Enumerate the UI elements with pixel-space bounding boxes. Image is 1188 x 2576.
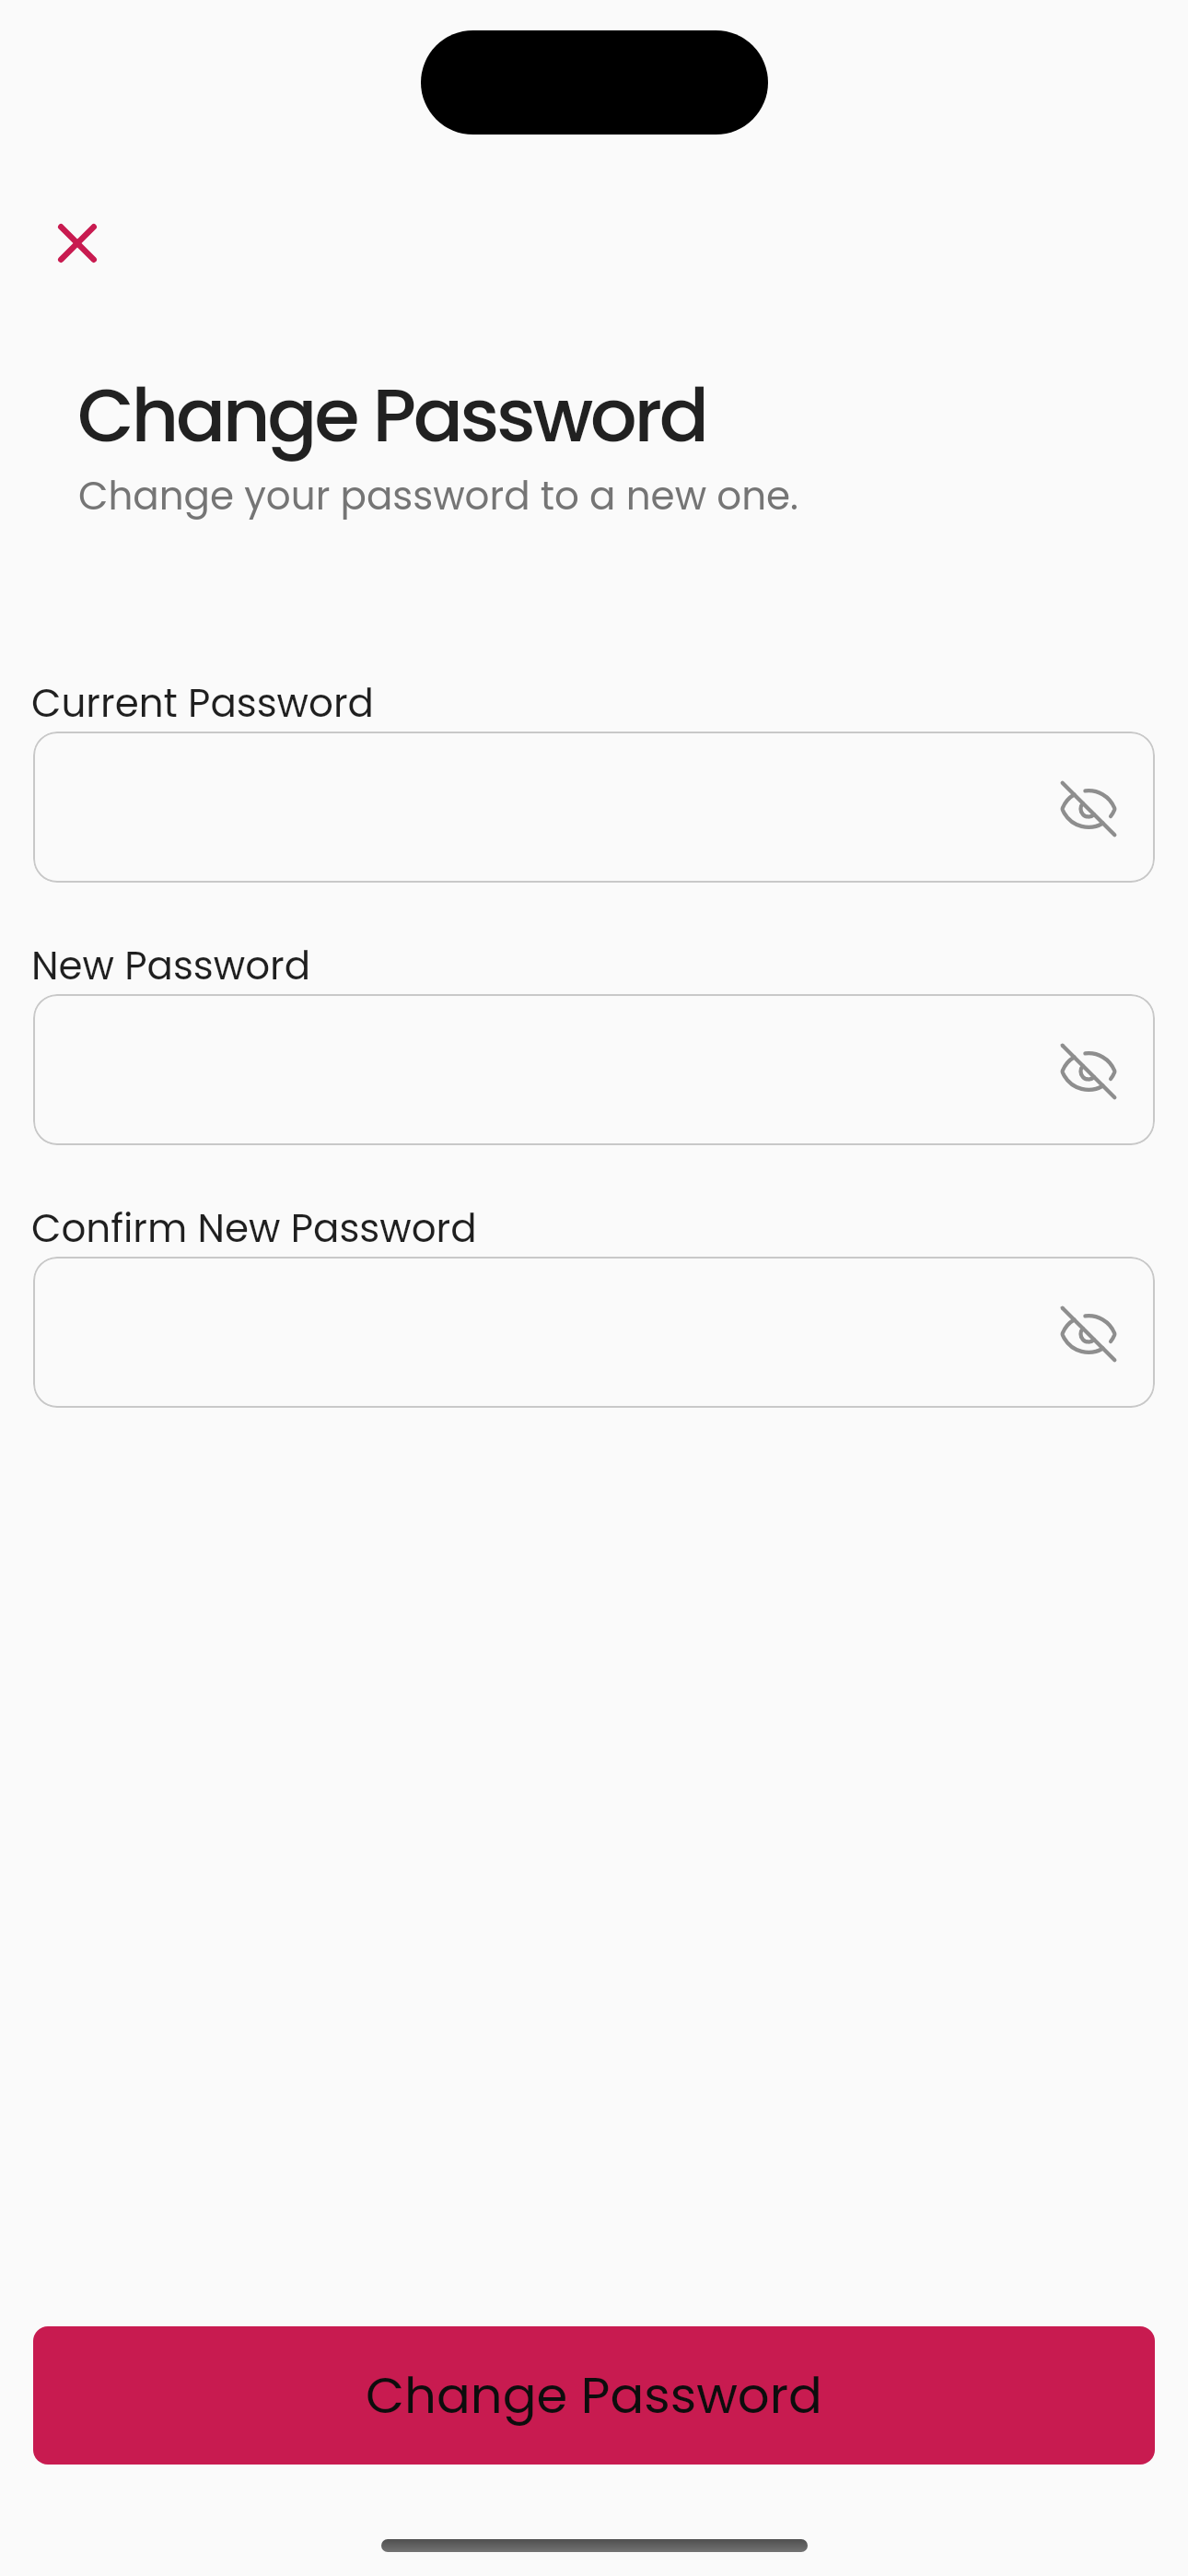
staticText: Change your password to a new one. <box>78 469 798 523</box>
staticText: Change Password <box>366 2360 822 2430</box>
staticText: Change Password <box>77 364 706 467</box>
button[interactable]: Show password <box>1057 1040 1120 1103</box>
button[interactable]: Show password <box>1057 778 1120 840</box>
button[interactable]: Show password <box>1057 1303 1120 1365</box>
button[interactable]: Close <box>18 184 136 302</box>
button[interactable]: Show password <box>33 1257 1155 1408</box>
button[interactable]: Change Password <box>33 2326 1155 2465</box>
staticText: Current Password <box>31 676 374 731</box>
staticText: New Password <box>31 939 311 993</box>
button[interactable]: Show password <box>33 994 1155 1145</box>
button[interactable]: Show password <box>33 732 1155 883</box>
staticText: Confirm New Password <box>31 1201 477 1256</box>
